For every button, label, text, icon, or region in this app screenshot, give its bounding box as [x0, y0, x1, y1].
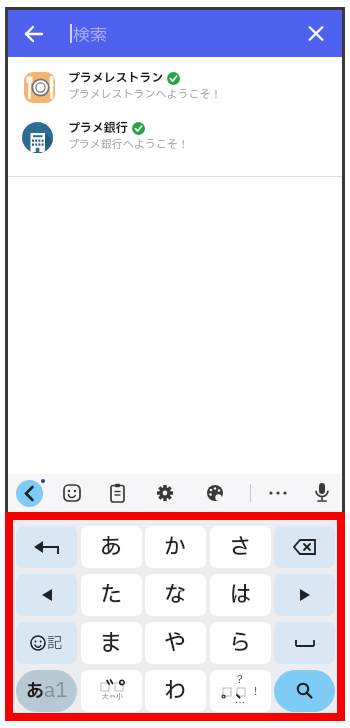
button[interactable]: [156, 484, 174, 502]
button[interactable]: [274, 574, 335, 616]
staticText: わ: [164, 675, 187, 708]
staticText: ?: [237, 671, 243, 688]
button[interactable]: わ: [145, 670, 206, 712]
button[interactable]: あ: [81, 526, 142, 568]
button[interactable]: [20, 19, 50, 49]
staticText: た: [100, 579, 123, 612]
button[interactable]: ま: [81, 622, 142, 664]
button[interactable]: [314, 482, 330, 504]
staticText: あ: [100, 531, 123, 564]
button[interactable]: [274, 622, 335, 664]
button[interactable]: [16, 574, 77, 616]
button[interactable]: 記: [16, 622, 77, 664]
staticText: あ: [26, 678, 44, 705]
button[interactable]: ?: [210, 670, 271, 712]
staticText: ら: [229, 627, 252, 660]
button[interactable]: [274, 670, 335, 712]
button[interactable]: か: [145, 526, 206, 568]
button[interactable]: [274, 526, 335, 568]
staticText: プラメレストランへようこそ！: [68, 86, 222, 103]
staticText: さ: [229, 531, 252, 564]
button[interactable]: [206, 484, 224, 502]
staticText: !: [254, 683, 258, 700]
button[interactable]: さ: [210, 526, 271, 568]
button[interactable]: [301, 20, 331, 47]
staticText: 記: [47, 632, 63, 654]
button[interactable]: あ: [16, 670, 77, 712]
staticText: a1: [44, 676, 68, 706]
button[interactable]: や: [145, 622, 206, 664]
button[interactable]: た: [81, 574, 142, 616]
staticText: プラメレストラン: [68, 69, 164, 87]
staticText: は: [229, 579, 252, 612]
button[interactable]: [268, 484, 288, 502]
button[interactable]: な: [145, 574, 206, 616]
button[interactable]: プラメ銀行: [8, 112, 342, 162]
staticText: プラメ銀行へようこそ！: [68, 136, 189, 153]
staticText: 大⇔小: [102, 692, 123, 702]
button[interactable]: [16, 480, 43, 507]
staticText: …: [235, 696, 245, 711]
button[interactable]: [63, 484, 81, 502]
staticText: か: [164, 531, 187, 564]
button[interactable]: は: [210, 574, 271, 616]
button[interactable]: ら: [210, 622, 271, 664]
staticText: ま: [100, 627, 123, 660]
button[interactable]: [109, 483, 126, 503]
staticText: 検索: [73, 23, 107, 48]
staticText: や: [164, 627, 187, 660]
staticText: な: [164, 579, 187, 612]
staticText: プラメ銀行: [68, 119, 128, 137]
button[interactable]: プラメレストラン: [8, 62, 342, 112]
button[interactable]: 大⇔小: [81, 670, 142, 712]
button[interactable]: [16, 526, 77, 568]
